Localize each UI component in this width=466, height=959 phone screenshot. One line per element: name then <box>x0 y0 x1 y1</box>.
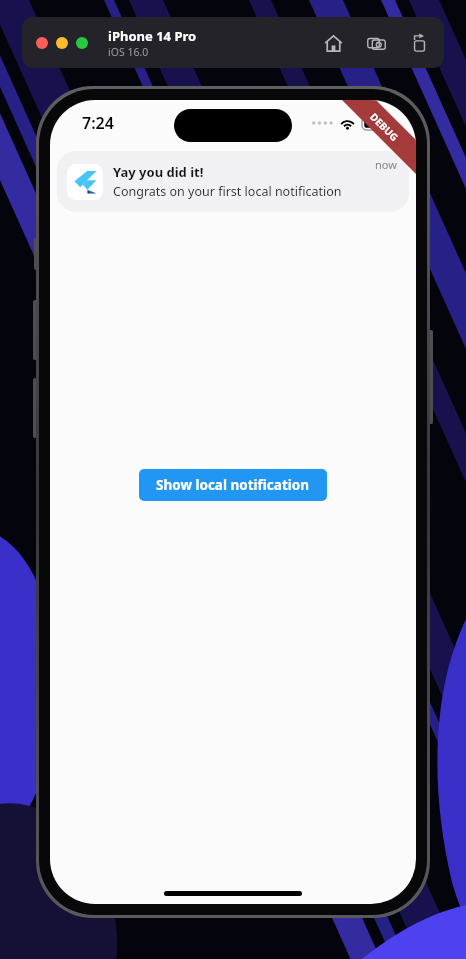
button[interactable]: Screenshot <box>363 30 389 56</box>
staticText: Congrats on your first local notificatio… <box>113 183 342 200</box>
button[interactable]: Home <box>320 30 346 56</box>
button[interactable]: Close <box>36 37 48 49</box>
button[interactable]: Share <box>406 30 432 56</box>
button[interactable]: Yay you did it! <box>57 151 409 212</box>
staticText: Yay you did it! <box>113 163 204 181</box>
staticText: Show local notification <box>156 476 310 494</box>
staticText: iPhone 14 Pro <box>108 27 197 45</box>
button[interactable]: Minimize <box>56 37 68 49</box>
button[interactable]: Show local notification <box>139 469 327 501</box>
staticText: 7:24 <box>82 112 114 134</box>
staticText: iOS 16.0 <box>108 45 149 59</box>
button[interactable]: Zoom <box>76 37 88 49</box>
staticText: DEBUG <box>367 110 402 144</box>
staticText: now <box>375 157 397 172</box>
